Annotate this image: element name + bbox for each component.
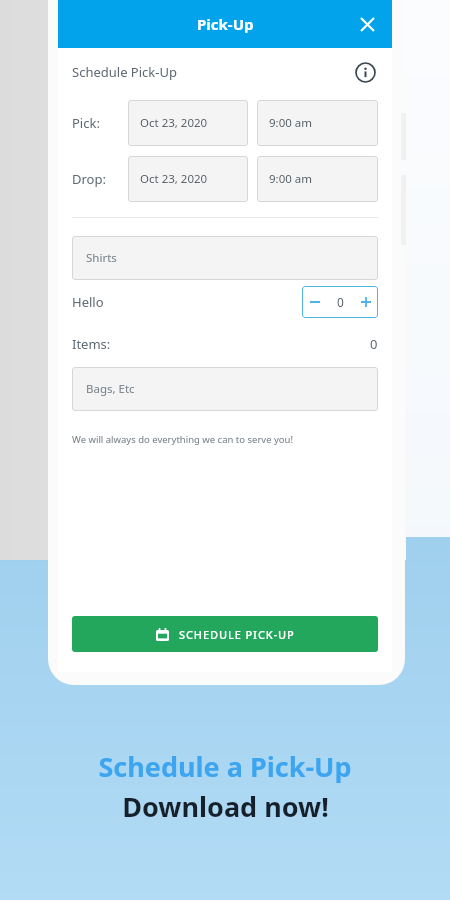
button[interactable]: 9:00 am [257, 100, 378, 146]
button[interactable]: Bags, Etc [72, 367, 378, 411]
staticText: Items: [72, 335, 111, 353]
staticText: Oct 23, 2020 [140, 171, 208, 187]
button[interactable]: SCHEDULE PICK-UP [72, 616, 378, 652]
staticText: Pick-Up [197, 14, 254, 34]
staticText: Pick: [72, 114, 128, 132]
button[interactable]: Decrease [302, 286, 328, 318]
staticText: Download now! [122, 788, 329, 825]
staticText: 0 [370, 335, 378, 353]
button[interactable]: 9:00 am [257, 156, 378, 202]
button[interactable]: Shirts [72, 236, 378, 280]
staticText: Schedule Pick-Up [72, 63, 177, 81]
staticText: SCHEDULE PICK-UP [179, 627, 295, 642]
staticText: 0 [337, 294, 344, 310]
staticText: 9:00 am [269, 171, 313, 187]
button[interactable]: Oct 23, 2020 [128, 156, 248, 202]
staticText: Bags, Etc [86, 381, 135, 397]
button[interactable]: Information [350, 57, 380, 87]
button[interactable]: Oct 23, 2020 [128, 100, 248, 146]
staticText: Schedule a Pick-Up [98, 748, 352, 785]
staticText: Oct 23, 2020 [140, 115, 208, 131]
staticText: 9:00 am [269, 115, 313, 131]
button[interactable]: Increase [353, 286, 378, 318]
staticText: Shirts [86, 250, 117, 266]
staticText: We will always do everything we can to s… [72, 433, 293, 446]
staticText: Drop: [72, 170, 128, 188]
button[interactable]: Close [350, 7, 384, 41]
staticText: Hello [72, 293, 104, 311]
